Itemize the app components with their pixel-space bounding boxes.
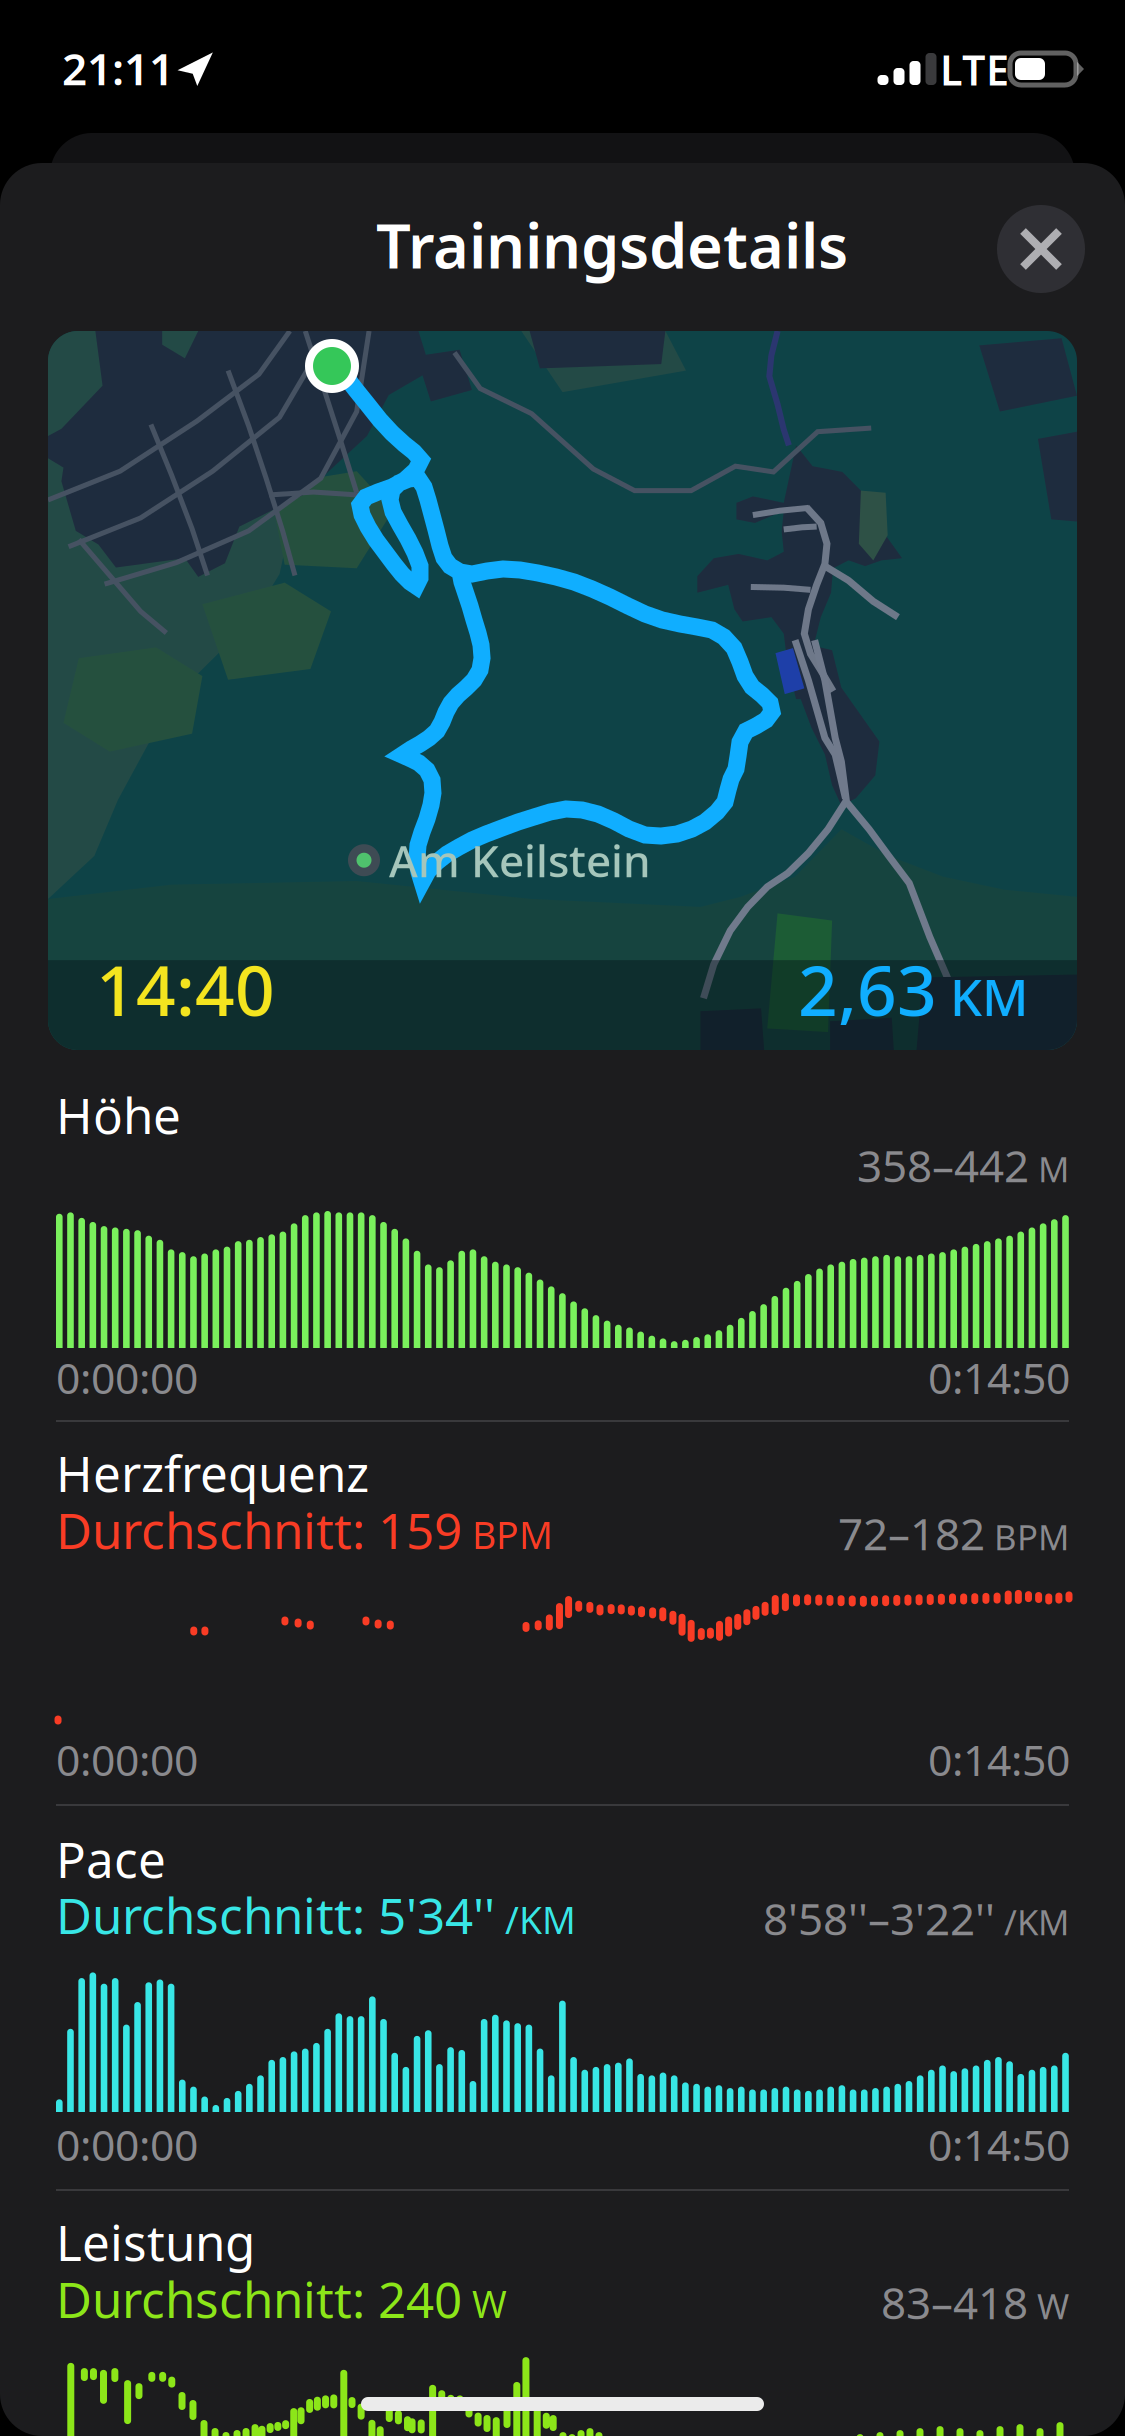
- staticText: 0:14:50: [928, 1349, 1070, 1406]
- staticText: BPM: [462, 1510, 553, 1559]
- staticText: KM: [937, 963, 1029, 1030]
- staticText: /KM: [495, 1895, 576, 1944]
- staticText: Trainingsdetails: [376, 204, 848, 285]
- staticText: 72–182: [838, 1504, 985, 1562]
- staticText: Höhe: [56, 1082, 181, 1147]
- staticText: Durchschnitt: 159: [56, 1497, 462, 1562]
- staticText: LTE: [940, 42, 1009, 97]
- staticText: 0:00:00: [56, 1349, 198, 1406]
- staticText: Herzfrequenz: [56, 1440, 369, 1505]
- staticText: 358–442: [857, 1136, 1029, 1194]
- button[interactable]: Schließen: [997, 205, 1085, 293]
- staticText: 8'58''–3'22'': [763, 1889, 995, 1947]
- staticText: /KM: [995, 1899, 1069, 1945]
- staticText: 0:14:50: [928, 2116, 1070, 2173]
- staticText: W: [1028, 2283, 1069, 2329]
- staticText: 0:00:00: [56, 1731, 198, 1788]
- staticText: M: [1029, 1146, 1069, 1192]
- staticText: Leistung: [56, 2209, 255, 2274]
- staticText: 2,63: [798, 943, 937, 1035]
- staticText: Pace: [56, 1826, 166, 1891]
- staticText: 21:11: [62, 39, 174, 97]
- staticText: Am Keilstein: [389, 831, 651, 889]
- staticText: BPM: [985, 1514, 1069, 1560]
- staticText: Durchschnitt: 240: [56, 2266, 462, 2331]
- staticText: 14:40: [96, 943, 275, 1035]
- staticText: 83–418: [881, 2273, 1028, 2331]
- staticText: 0:00:00: [56, 2116, 198, 2173]
- staticText: W: [462, 2279, 507, 2328]
- staticText: 0:14:50: [928, 1731, 1070, 1788]
- staticText: Durchschnitt: 5'34'': [56, 1882, 495, 1947]
